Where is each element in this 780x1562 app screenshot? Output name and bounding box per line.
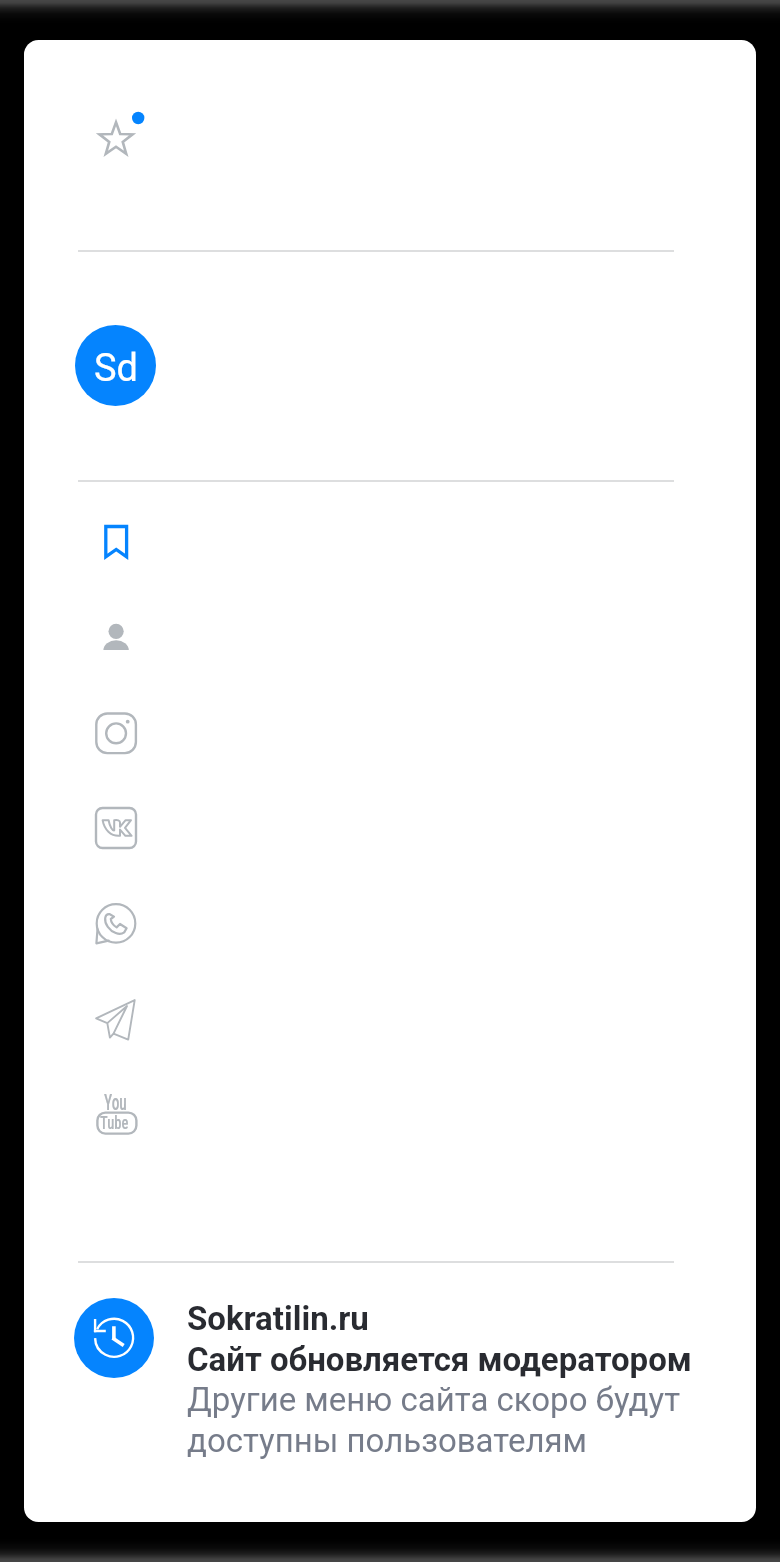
button[interactable]: Telegram	[72, 976, 160, 1064]
button[interactable]: Profile	[72, 603, 160, 691]
button[interactable]: Instagram	[72, 690, 160, 778]
staticText: You	[104, 1090, 127, 1116]
button[interactable]: Sokratilin.ru	[70, 1290, 730, 1505]
staticText: Сайт обновляется модератором	[187, 1340, 692, 1379]
staticText: Sokratilin.ru	[187, 1299, 369, 1338]
staticText: доступны пользователям	[187, 1421, 588, 1460]
staticText: Другие меню сайта скоро будут	[187, 1380, 681, 1419]
button[interactable]: YouTube	[72, 1069, 160, 1157]
button[interactable]: WhatsApp	[72, 880, 160, 968]
staticText: Tube	[100, 1112, 128, 1134]
staticText: Sd	[94, 346, 138, 391]
button[interactable]: VKontakte	[72, 784, 160, 872]
button[interactable]: Favourites	[72, 88, 160, 176]
button[interactable]: Bookmarks	[72, 509, 160, 597]
button[interactable]: Sd	[75, 325, 156, 406]
